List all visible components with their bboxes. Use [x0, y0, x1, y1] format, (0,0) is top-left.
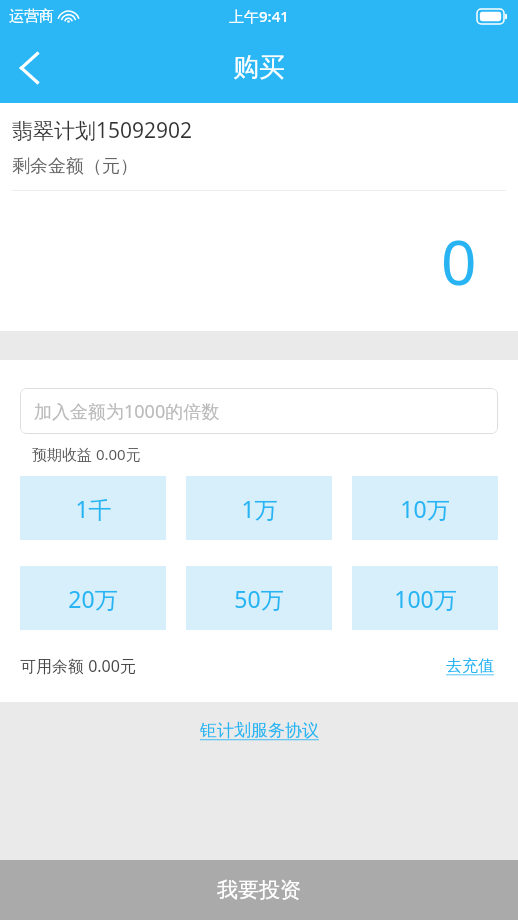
- button[interactable]: 钜计划服务协议: [194, 714, 325, 747]
- staticText: 可用余额 0.00元: [20, 655, 136, 677]
- staticText: 1千: [75, 493, 112, 524]
- button[interactable]: Back: [0, 39, 58, 97]
- button[interactable]: 20万: [20, 566, 166, 630]
- staticText: 运营商: [9, 7, 54, 26]
- button[interactable]: 我要投资: [0, 860, 518, 920]
- staticText: 0: [441, 219, 477, 303]
- staticText: 剩余金额（元）: [12, 155, 138, 178]
- button[interactable]: 1万: [186, 476, 332, 540]
- staticText: 100万: [394, 583, 457, 614]
- button[interactable]: 加入金额为1000的倍数: [20, 388, 498, 434]
- staticText: 20万: [68, 583, 118, 614]
- staticText: 我要投资: [217, 877, 301, 903]
- staticText: 50万: [234, 583, 284, 614]
- staticText: 1万: [241, 493, 278, 524]
- button[interactable]: 10万: [352, 476, 498, 540]
- staticText: 去充值: [446, 656, 494, 676]
- button[interactable]: 100万: [352, 566, 498, 630]
- button[interactable]: 去充值: [442, 652, 498, 680]
- staticText: 加入金额为1000的倍数: [34, 399, 220, 424]
- staticText: 上午9:41: [229, 6, 289, 26]
- staticText: 翡翠计划15092902: [12, 116, 193, 145]
- button[interactable]: 50万: [186, 566, 332, 630]
- button[interactable]: 1千: [20, 476, 166, 540]
- staticText: 购买: [233, 51, 285, 84]
- staticText: 预期收益 0.00元: [32, 444, 141, 464]
- staticText: 10万: [400, 493, 450, 524]
- staticText: 钜计划服务协议: [200, 720, 319, 741]
